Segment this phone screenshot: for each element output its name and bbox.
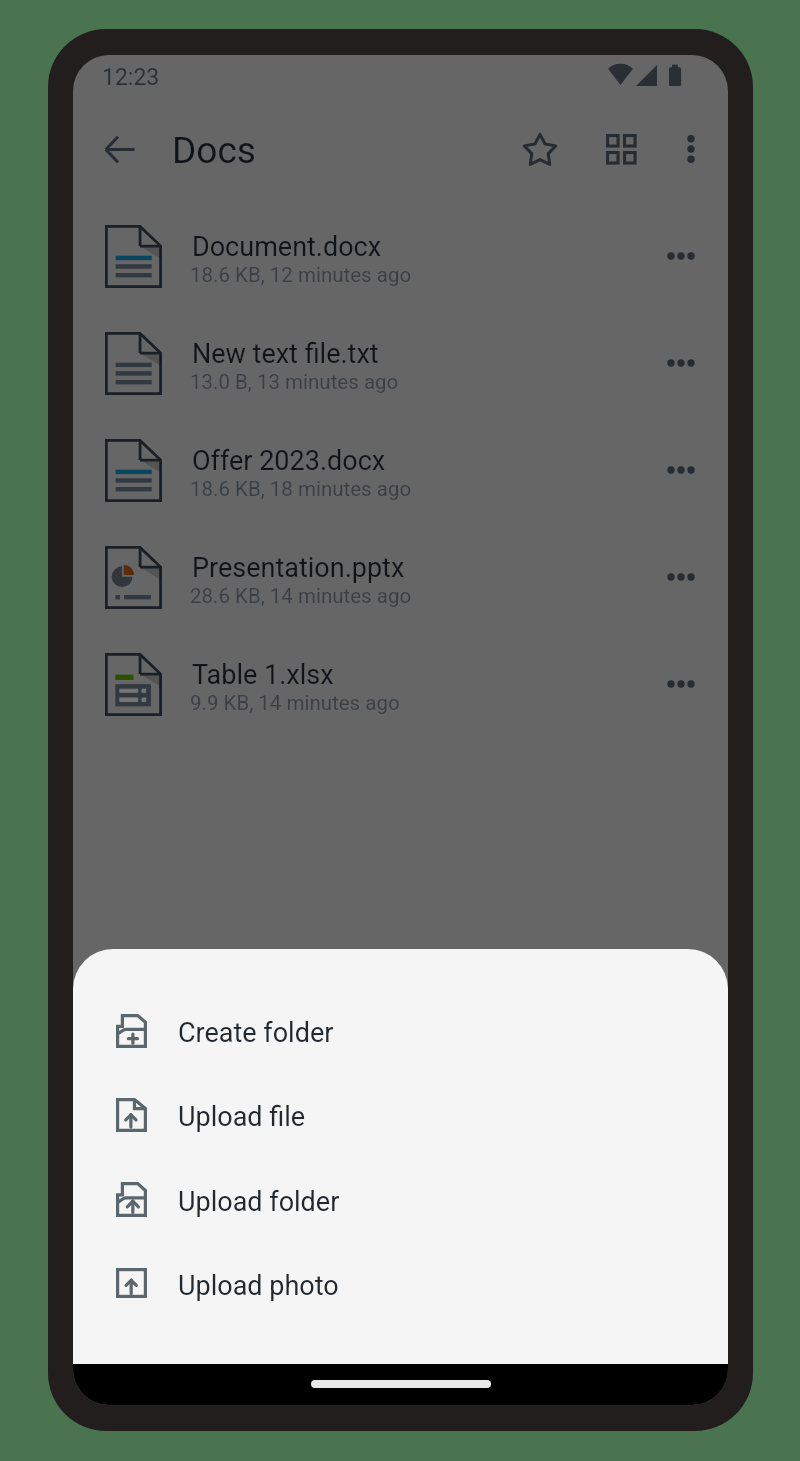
button[interactable]: Table 1.xlsx — [73, 631, 728, 738]
button[interactable]: Create folder — [73, 989, 728, 1073]
staticText: Docs — [172, 129, 256, 172]
button[interactable]: Offer 2023.docx — [73, 417, 728, 524]
staticText: 18.6 KB, 18 minutes ago — [190, 477, 412, 501]
button[interactable]: Item options — [652, 334, 710, 392]
button[interactable]: Upload file — [73, 1073, 728, 1157]
button[interactable]: Document.docx — [73, 203, 728, 310]
staticText: 13.0 B, 13 minutes ago — [190, 370, 399, 394]
staticText: Upload folder — [178, 1186, 340, 1218]
staticText: 12:23 — [102, 64, 160, 91]
staticText: Offer 2023.docx — [192, 445, 386, 477]
button[interactable]: Grid view — [593, 121, 649, 177]
button[interactable]: Favorite — [512, 122, 568, 178]
button[interactable]: New text file.txt — [73, 310, 728, 417]
staticText: Presentation.pptx — [192, 552, 405, 584]
button[interactable]: Item options — [652, 227, 710, 285]
button[interactable]: Back — [91, 121, 147, 177]
staticText: Create folder — [178, 1017, 334, 1049]
button[interactable]: Presentation.pptx — [73, 524, 728, 631]
staticText: Table 1.xlsx — [192, 659, 334, 691]
button[interactable]: Item options — [652, 548, 710, 606]
button[interactable]: Upload photo — [73, 1242, 728, 1326]
button[interactable]: Item options — [652, 441, 710, 499]
staticText: 9.9 KB, 14 minutes ago — [190, 691, 400, 715]
staticText: Upload file — [178, 1101, 306, 1133]
staticText: 28.6 KB, 14 minutes ago — [190, 584, 412, 608]
staticText: Upload photo — [178, 1270, 339, 1302]
staticText: 18.6 KB, 12 minutes ago — [190, 263, 412, 287]
button[interactable]: More options — [663, 121, 719, 177]
staticText: Document.docx — [192, 231, 382, 263]
staticText: New text file.txt — [192, 338, 379, 370]
button[interactable]: Item options — [652, 655, 710, 713]
button[interactable]: Upload folder — [73, 1158, 728, 1242]
